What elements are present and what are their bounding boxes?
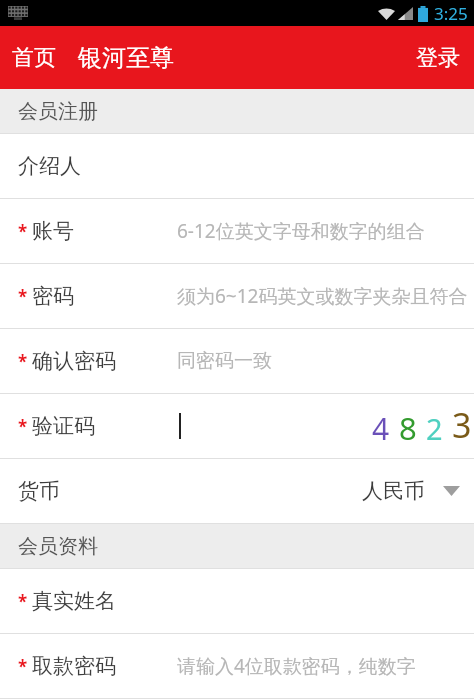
button[interactable]: 首页: [0, 32, 66, 84]
staticText: 首页: [12, 44, 56, 72]
staticText: 货币: [18, 478, 60, 504]
staticText: *: [18, 285, 28, 308]
staticText: 8: [399, 407, 417, 449]
button[interactable]: 货币: [0, 459, 474, 523]
button[interactable]: *: [0, 569, 474, 633]
staticText: 3:25: [434, 2, 468, 25]
button[interactable]: *: [0, 634, 474, 698]
staticText: 介绍人: [18, 153, 81, 179]
staticText: 2: [426, 409, 443, 448]
staticText: 6-12位英文字母和数字的组合: [177, 218, 425, 244]
button[interactable]: *: [0, 199, 474, 263]
staticText: 密码: [32, 283, 74, 309]
staticText: 真实姓名: [32, 588, 116, 614]
staticText: 登录: [416, 44, 460, 72]
staticText: 请输入4位取款密码，纯数字: [177, 653, 416, 679]
staticText: *: [18, 590, 28, 613]
button[interactable]: *: [0, 329, 474, 393]
other: Select currency: [443, 486, 460, 496]
staticText: *: [18, 415, 28, 438]
staticText: *: [18, 220, 28, 243]
staticText: 取款密码: [32, 653, 116, 679]
staticText: 人民币: [362, 478, 425, 504]
staticText: 会员资料: [18, 534, 98, 559]
staticText: 4: [372, 408, 390, 449]
staticText: 验证码: [32, 413, 95, 439]
button[interactable]: *: [0, 394, 474, 458]
staticText: 银河至尊: [78, 43, 174, 73]
staticText: 须为6~12码英文或数字夹杂且符合0: [177, 283, 472, 309]
staticText: *: [18, 350, 28, 373]
button[interactable]: 登录: [402, 30, 474, 86]
button[interactable]: *: [0, 264, 474, 328]
staticText: 确认密码: [32, 348, 116, 374]
button[interactable]: 介绍人: [0, 134, 474, 198]
staticText: 会员注册: [18, 99, 98, 124]
staticText: 3: [452, 402, 472, 448]
staticText: *: [18, 655, 28, 678]
button[interactable]: Refresh captcha: [372, 402, 472, 451]
staticText: 同密码一致: [177, 349, 272, 373]
staticText: 账号: [32, 218, 74, 244]
